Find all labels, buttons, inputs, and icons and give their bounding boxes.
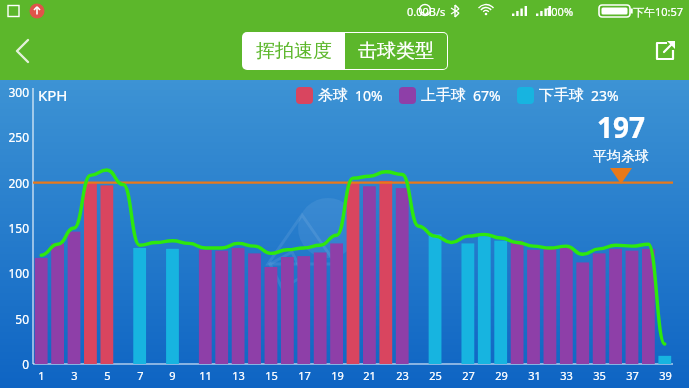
- staticText: 100%: [545, 4, 574, 19]
- staticText: 0: [22, 356, 29, 372]
- staticText: 37: [626, 368, 639, 383]
- staticText: 0.00B/s: [407, 4, 446, 19]
- staticText: 平均杀球: [593, 148, 649, 166]
- staticText: 杀球: [318, 86, 348, 105]
- staticText: 31: [528, 368, 541, 383]
- staticText: 33: [560, 368, 573, 383]
- staticText: 50: [15, 311, 29, 327]
- button[interactable]: Share: [641, 27, 689, 75]
- staticText: 9: [169, 368, 176, 383]
- staticText: 29: [495, 368, 508, 383]
- staticText: KPH: [38, 85, 68, 105]
- staticText: 3: [71, 368, 78, 383]
- staticText: 200: [8, 175, 29, 191]
- staticText: 10%: [355, 86, 383, 105]
- staticText: 11: [199, 368, 212, 383]
- staticText: 23: [396, 368, 409, 383]
- staticText: 下手球: [539, 86, 584, 105]
- staticText: 击球类型: [358, 39, 434, 63]
- staticText: 27: [462, 368, 475, 383]
- staticText: 下午10:57: [633, 4, 684, 19]
- staticText: 39: [659, 368, 672, 383]
- staticText: 150: [8, 220, 29, 236]
- staticText: 300: [8, 84, 29, 100]
- staticText: 250: [8, 129, 29, 145]
- staticText: 7: [137, 368, 144, 383]
- staticText: 13: [232, 368, 245, 383]
- staticText: 21: [363, 368, 376, 383]
- staticText: 17: [298, 368, 311, 383]
- staticText: 5: [104, 368, 111, 383]
- staticText: 上手球: [421, 86, 466, 105]
- staticText: 35: [593, 368, 606, 383]
- staticText: 197: [597, 108, 646, 146]
- staticText: 23%: [591, 86, 619, 105]
- button[interactable]: 挥拍速度: [243, 33, 345, 69]
- button[interactable]: Back: [0, 27, 48, 75]
- staticText: 挥拍速度: [256, 39, 332, 63]
- staticText: 100: [8, 265, 29, 281]
- staticText: 25: [429, 368, 442, 383]
- staticText: 15: [265, 368, 278, 383]
- staticText: 1: [38, 368, 45, 383]
- staticText: 19: [331, 368, 344, 383]
- staticText: 67%: [473, 86, 501, 105]
- button[interactable]: 击球类型: [345, 33, 447, 69]
